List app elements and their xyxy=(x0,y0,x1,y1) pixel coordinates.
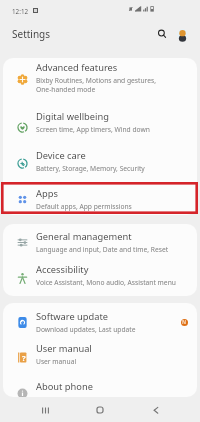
button[interactable]: Advanced features xyxy=(3,58,197,106)
button[interactable]: ? xyxy=(3,336,197,369)
button[interactable]: Back xyxy=(144,400,168,420)
staticText: Accessibility xyxy=(36,263,89,276)
button[interactable]: Recent apps xyxy=(33,400,57,420)
staticText: Bixby Routines, Motions and gestures, xyxy=(36,76,156,85)
button[interactable]: Samsung account xyxy=(172,24,192,44)
button[interactable]: Accessibility xyxy=(3,260,197,296)
staticText: User manual xyxy=(36,342,92,355)
staticText: Device care xyxy=(36,149,86,162)
staticText: Screen time, App timers, Wind down xyxy=(36,125,150,134)
button[interactable]: Software update xyxy=(3,303,197,336)
button[interactable]: Home xyxy=(88,400,112,420)
button[interactable]: Apps xyxy=(3,184,197,215)
staticText: One-handed mode xyxy=(36,85,96,94)
staticText: N xyxy=(182,319,187,326)
staticText: Digital wellbeing xyxy=(36,110,109,123)
button[interactable]: Device care xyxy=(3,145,197,184)
staticText: Language and input, Date and time, Reset xyxy=(36,245,169,254)
staticText: Download updates, Last update xyxy=(36,325,136,334)
staticText: Default apps, App permissions xyxy=(36,202,132,211)
staticText: Software update xyxy=(36,310,109,323)
staticText: ? xyxy=(22,353,26,363)
staticText: About phone xyxy=(36,380,93,393)
staticText: Advanced features xyxy=(36,61,118,74)
staticText: Settings xyxy=(12,27,51,41)
staticText: Voice Assistant, Mono audio, Assistant m… xyxy=(36,278,176,287)
button[interactable]: General management xyxy=(3,224,197,260)
button[interactable]: Digital wellbeing xyxy=(3,106,197,145)
staticText: General management xyxy=(36,230,132,243)
button[interactable]: Search xyxy=(152,24,172,44)
staticText: 12:12 xyxy=(12,7,29,16)
staticText: Battery, Storage, Memory, Security xyxy=(36,164,145,173)
staticText: User manual xyxy=(36,357,77,366)
staticText: Apps xyxy=(36,187,58,200)
button[interactable]: About phone xyxy=(3,369,197,397)
